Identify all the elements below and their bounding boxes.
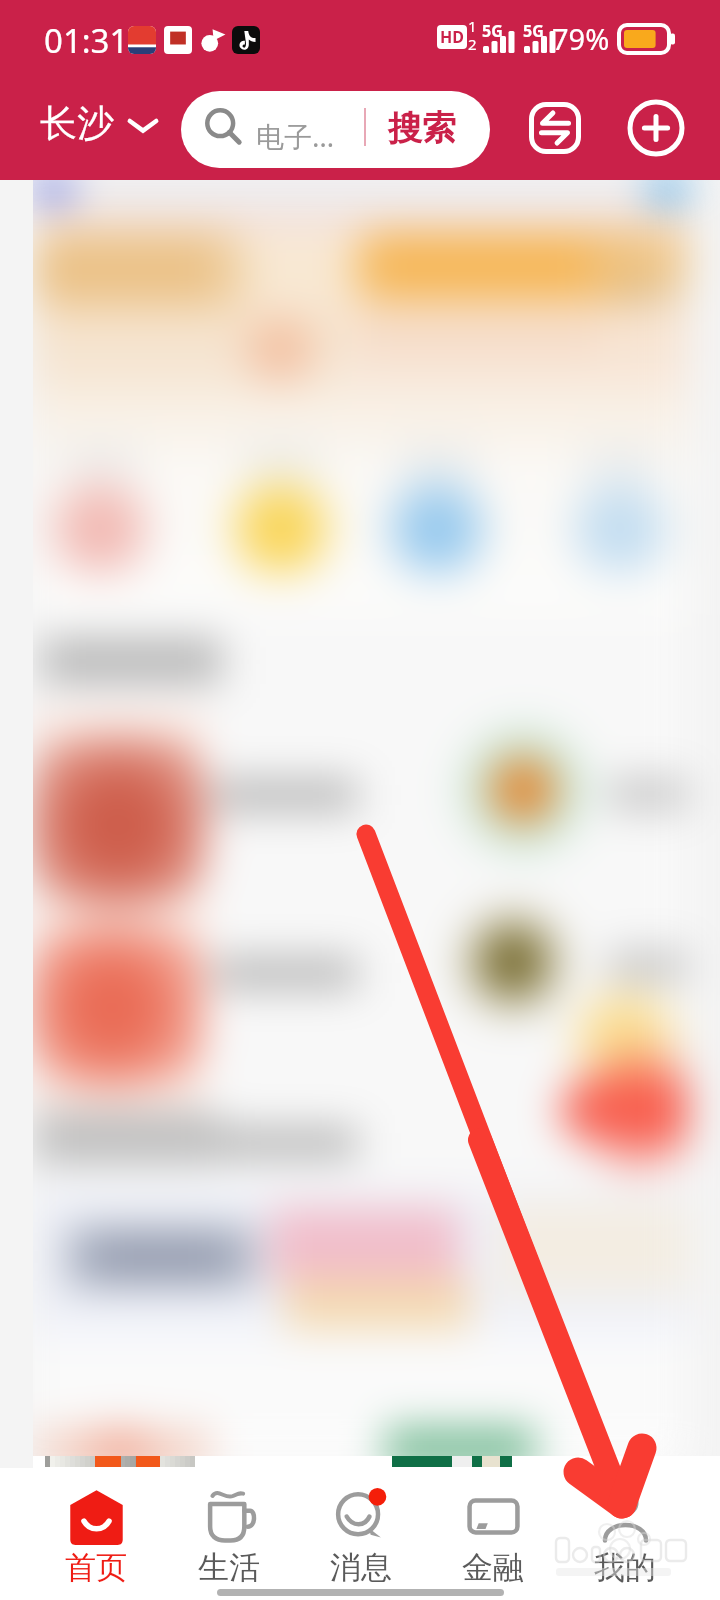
staticText: 2 — [468, 34, 477, 54]
staticText: 5G — [523, 20, 544, 42]
staticText: 01:31 — [44, 18, 129, 63]
staticText: 电子… — [256, 117, 335, 155]
staticText: 长沙 — [40, 100, 114, 147]
staticText: 首页 — [65, 1548, 127, 1587]
button[interactable]: 电子… — [181, 91, 490, 168]
button[interactable]: 长沙 — [40, 100, 158, 147]
button[interactable]: 生活 — [162, 1468, 295, 1600]
button[interactable]: 消息 — [295, 1468, 427, 1600]
button[interactable]: 首页 — [29, 1468, 162, 1600]
staticText: 79% — [552, 19, 610, 58]
button[interactable]: Add — [624, 96, 688, 160]
staticText: 搜索 — [388, 107, 456, 150]
button[interactable]: Scan to transfer — [524, 97, 586, 159]
staticText: 消息 — [330, 1548, 392, 1587]
staticText: 金融 — [462, 1548, 524, 1587]
button[interactable]: 金融 — [427, 1468, 559, 1600]
staticText: 生活 — [198, 1548, 260, 1587]
staticText: 1 — [468, 16, 477, 36]
staticText: 5G — [482, 20, 503, 42]
staticText: 我的 — [594, 1548, 656, 1587]
button[interactable]: 我的 — [559, 1468, 691, 1600]
staticText: HD — [440, 26, 464, 48]
